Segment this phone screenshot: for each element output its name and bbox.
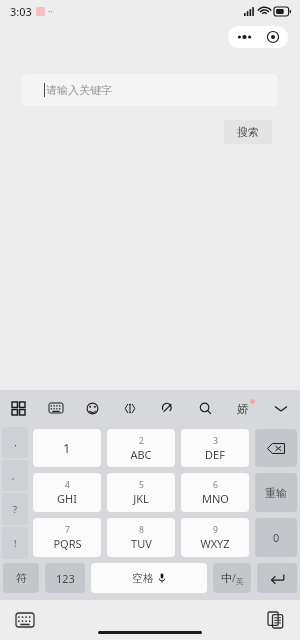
button[interactable]: 2 — [107, 429, 175, 467]
staticText: DEF — [205, 447, 225, 462]
staticText: 6 — [213, 479, 218, 491]
other: More — [231, 26, 257, 48]
staticText: WXYZ — [200, 536, 230, 551]
staticText: 请输入关键字 — [46, 83, 112, 97]
button[interactable]: Hide — [262, 390, 300, 426]
button[interactable]: 。 — [2, 460, 28, 491]
staticText: 重输 — [265, 486, 287, 500]
staticText: 9 — [213, 524, 218, 536]
staticText: 8 — [139, 524, 144, 536]
button[interactable]: ? — [2, 493, 28, 525]
button[interactable]: 符 — [3, 563, 39, 593]
staticText: 空格 — [132, 571, 154, 585]
staticText: 符 — [16, 571, 27, 585]
button[interactable]: Emoji — [74, 390, 111, 426]
staticText: / — [232, 571, 236, 585]
button[interactable]: 8 — [107, 518, 175, 557]
button[interactable]: Keyboard — [37, 390, 74, 426]
staticText: MNO — [202, 491, 229, 506]
button[interactable]: 中 — [213, 563, 251, 593]
staticText: ·· — [48, 5, 53, 17]
staticText: 娇 — [237, 401, 249, 416]
staticText: ? — [13, 503, 17, 515]
staticText: 1 — [63, 439, 71, 457]
button[interactable]: Clipboard — [111, 390, 148, 426]
staticText: 中 — [221, 571, 232, 585]
staticText: 5 — [139, 479, 144, 491]
button[interactable]: 123 — [45, 563, 85, 593]
staticText: 0 — [273, 530, 280, 545]
staticText: ， — [11, 437, 20, 448]
staticText: ! — [14, 537, 17, 549]
button[interactable]: 9 — [181, 518, 249, 557]
button[interactable]: 7 — [33, 518, 101, 557]
staticText: 7 — [65, 524, 70, 536]
button[interactable]: More — [228, 26, 288, 48]
button[interactable]: Search — [186, 390, 224, 426]
button[interactable]: 4 — [33, 473, 101, 512]
button[interactable]: Attach — [148, 390, 186, 426]
staticText: 。 — [11, 470, 20, 481]
button[interactable]: ， — [2, 427, 28, 458]
button[interactable]: 0 — [255, 518, 297, 557]
button[interactable]: 3 — [181, 429, 249, 467]
button[interactable]: 请输入关键字 — [22, 74, 278, 106]
button[interactable]: Backspace — [255, 429, 297, 467]
staticText: JKL — [133, 491, 149, 506]
staticText: PQRS — [53, 536, 82, 551]
other: Close — [261, 26, 285, 48]
staticText: 123 — [56, 571, 75, 586]
button[interactable]: 搜索 — [224, 120, 272, 144]
button[interactable]: 空格 — [91, 563, 207, 593]
button[interactable]: 5 — [107, 473, 175, 512]
staticText: 2 — [139, 435, 144, 447]
button[interactable]: Skin — [224, 390, 262, 426]
button[interactable]: Keyboard — [14, 611, 36, 629]
staticText: 英 — [236, 577, 244, 586]
staticText: TUV — [131, 536, 152, 551]
button[interactable]: Clipboard — [264, 611, 286, 629]
staticText: 搜索 — [237, 125, 259, 139]
staticText: 4 — [65, 479, 70, 491]
button[interactable]: Enter — [257, 563, 297, 593]
staticText: 3:03 — [10, 4, 32, 19]
staticText: 3 — [213, 435, 218, 447]
button[interactable]: 重输 — [255, 473, 297, 512]
staticText: GHI — [57, 491, 77, 506]
button[interactable]: 6 — [181, 473, 249, 512]
button[interactable]: ! — [2, 527, 28, 559]
button[interactable]: 1 — [33, 429, 101, 467]
button[interactable]: Grid — [0, 390, 37, 426]
staticText: ABC — [130, 447, 152, 462]
